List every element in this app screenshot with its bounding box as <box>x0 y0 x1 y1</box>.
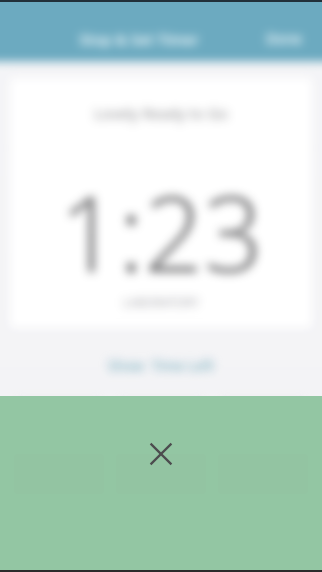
staticText: 1:23 <box>59 161 263 303</box>
button[interactable]: Done <box>260 25 308 52</box>
button[interactable]: Close <box>139 432 183 476</box>
staticText: Done <box>266 29 302 48</box>
staticText: Lovely Ready to Go <box>94 103 228 123</box>
button[interactable]: Lovely Ready to Go <box>10 78 312 148</box>
staticText: LABORATORY <box>123 294 199 310</box>
staticText: Show Time Left <box>108 356 214 375</box>
button[interactable]: Stop & Set Timer <box>18 29 260 49</box>
button[interactable]: Show Time Left <box>0 342 322 388</box>
staticText: Stop & Set Timer <box>79 29 199 49</box>
